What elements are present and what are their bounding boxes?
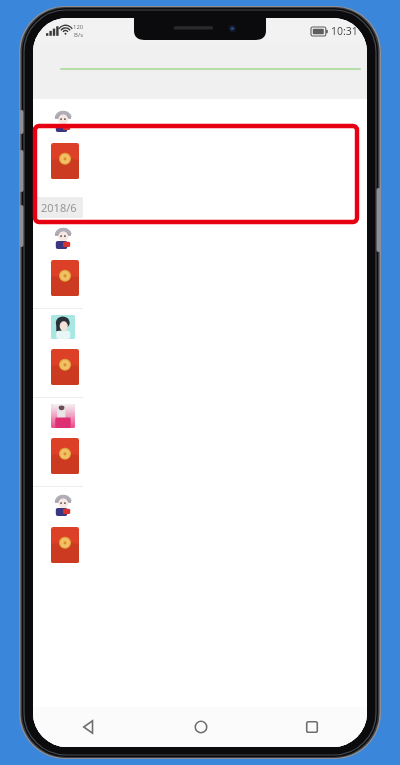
other: Contact avatar bbox=[51, 226, 75, 250]
button[interactable]: Red packet bbox=[51, 143, 79, 179]
button[interactable]: Red packet bbox=[51, 260, 79, 296]
other: Contact avatar bbox=[51, 493, 75, 517]
staticText: 120 bbox=[73, 23, 84, 31]
button[interactable]: Home bbox=[145, 707, 256, 747]
button[interactable]: Contact avatar bbox=[33, 220, 367, 308]
button[interactable]: Contact avatar bbox=[33, 99, 367, 191]
button[interactable]: Recents bbox=[256, 707, 367, 747]
staticText: 10:31 bbox=[331, 24, 358, 38]
button[interactable]: 2018/6 bbox=[35, 197, 83, 218]
button[interactable]: Red packet bbox=[51, 438, 79, 474]
button[interactable]: Red packet bbox=[51, 349, 79, 385]
button[interactable]: Contact avatar bbox=[33, 398, 367, 486]
button[interactable]: Contact avatar bbox=[33, 487, 367, 575]
button[interactable]: Back bbox=[33, 707, 145, 747]
staticText: 2018/6 bbox=[41, 200, 77, 215]
other: Contact avatar bbox=[51, 315, 75, 339]
button[interactable]: Red packet bbox=[51, 527, 79, 563]
button[interactable]: Contact avatar bbox=[33, 309, 367, 397]
other: Contact avatar bbox=[51, 404, 75, 428]
staticText: B/s bbox=[74, 31, 84, 39]
other: Contact avatar bbox=[51, 109, 75, 133]
